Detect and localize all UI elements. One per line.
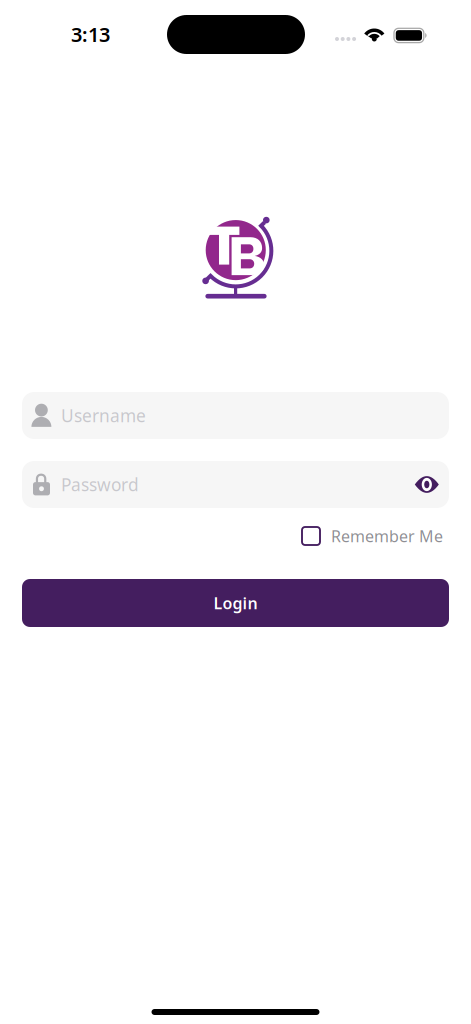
staticText: 3:13: [71, 21, 110, 48]
button[interactable]: Show password: [405, 461, 449, 508]
button[interactable]: Username: [22, 392, 449, 439]
button[interactable]: Login: [22, 579, 449, 627]
button[interactable]: Password: [22, 461, 449, 508]
staticText: Login: [213, 592, 257, 614]
staticText: Password: [61, 473, 139, 496]
staticText: Remember Me: [331, 525, 443, 547]
button[interactable]: Remember Me: [302, 526, 443, 546]
staticText: Username: [61, 404, 146, 427]
